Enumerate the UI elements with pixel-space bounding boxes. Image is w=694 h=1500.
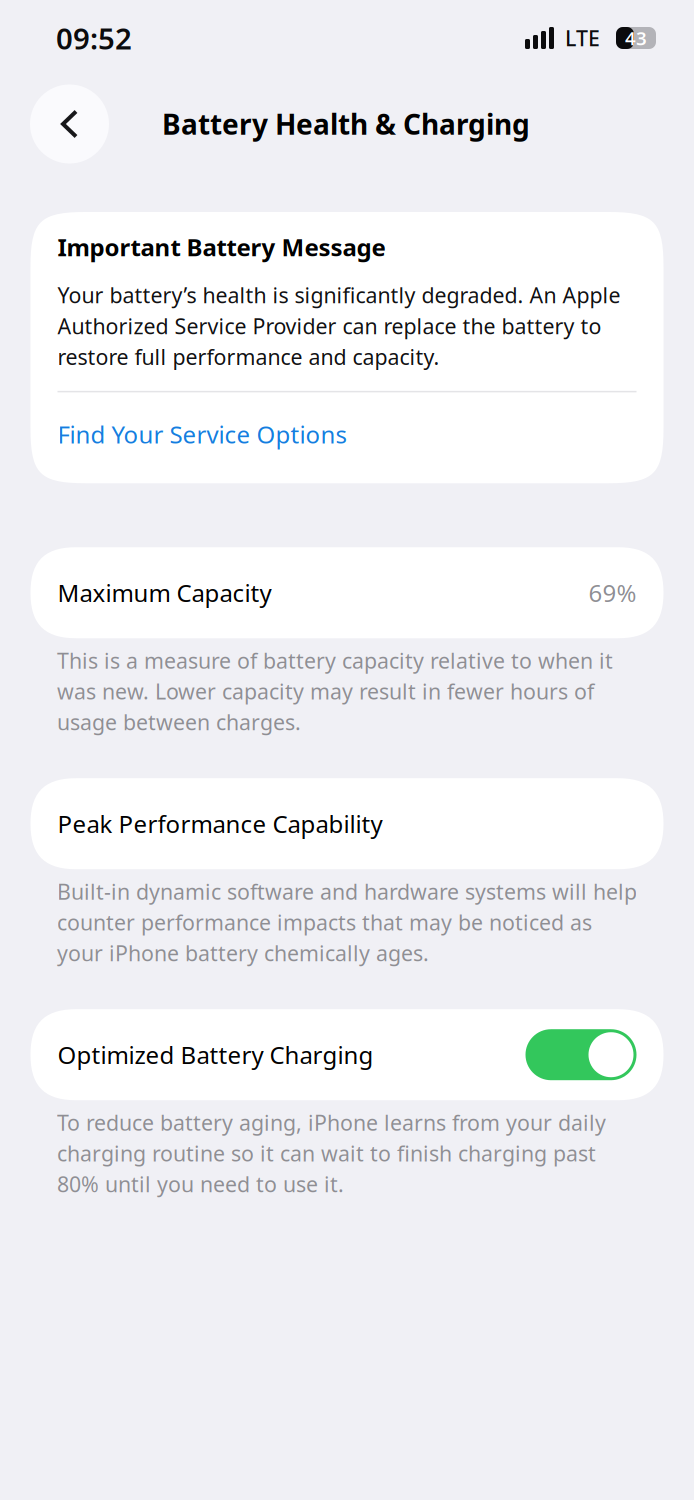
staticText: Battery Health & Charging xyxy=(162,105,530,143)
staticText: Important Battery Message xyxy=(57,231,385,263)
staticText: Optimized Battery Charging xyxy=(57,1039,373,1071)
staticText: Your battery’s health is significantly d… xyxy=(57,281,620,371)
staticText: LTE xyxy=(565,24,600,52)
button[interactable]: Peak Performance Capability xyxy=(30,778,663,869)
staticText: 43 xyxy=(625,26,647,50)
staticText: 09:52 xyxy=(56,18,132,57)
staticText: Peak Performance Capability xyxy=(57,808,382,840)
staticText: To reduce battery aging, iPhone learns f… xyxy=(57,1108,606,1198)
button[interactable]: Optimized Battery Charging xyxy=(525,1029,636,1080)
button[interactable]: Find Your Service Options xyxy=(57,392,636,483)
staticText: Built-in dynamic software and hardware s… xyxy=(57,877,637,967)
button[interactable]: Back xyxy=(30,84,109,163)
staticText: 69% xyxy=(588,577,636,609)
staticText: Maximum Capacity xyxy=(57,577,271,609)
staticText: Find Your Service Options xyxy=(57,418,346,450)
staticText: This is a measure of battery capacity re… xyxy=(57,646,613,736)
